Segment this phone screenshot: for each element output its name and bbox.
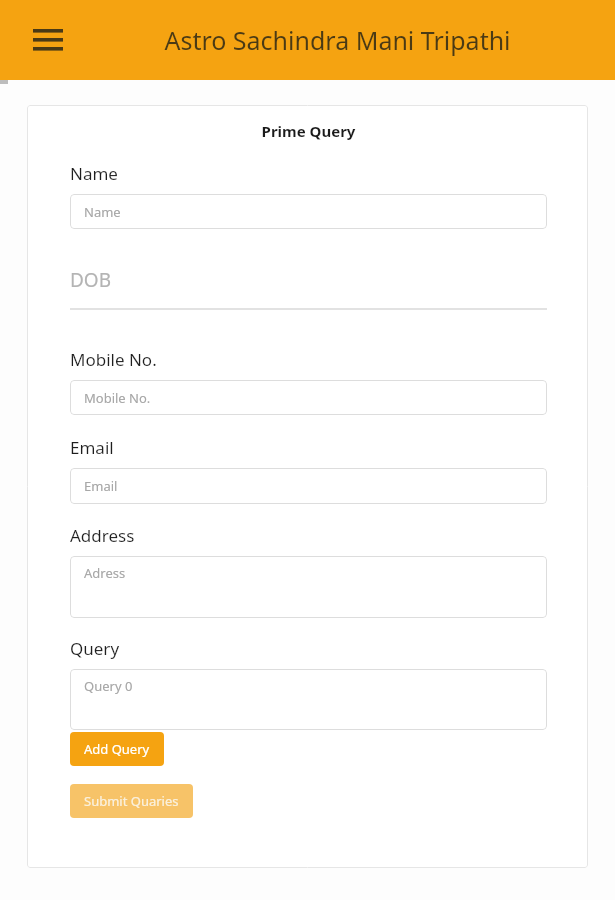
staticText: DOB	[70, 267, 112, 293]
staticText: Add Query	[84, 740, 150, 758]
button[interactable]: Open navigation menu	[22, 17, 74, 63]
button[interactable]: Mobile No.	[70, 380, 547, 415]
staticText: Email	[84, 477, 118, 495]
button[interactable]: Name	[70, 194, 547, 229]
staticText: Name	[70, 162, 118, 185]
button[interactable]: Email	[70, 468, 547, 504]
button[interactable]: Adress	[70, 556, 547, 618]
button[interactable]: Submit Quaries	[70, 784, 193, 818]
staticText: Email	[70, 436, 114, 459]
staticText: Mobile No.	[84, 389, 151, 407]
button[interactable]: Add Query	[70, 732, 164, 766]
staticText: Mobile No.	[70, 348, 157, 371]
staticText: Prime Query	[70, 121, 547, 141]
staticText: Address	[70, 524, 135, 547]
staticText: Submit Quaries	[84, 792, 179, 810]
staticText: Query 0	[84, 677, 133, 695]
staticText: Astro Sachindra Mani Tripathi	[164, 23, 511, 57]
staticText: Name	[84, 203, 121, 221]
staticText: Query	[70, 637, 120, 660]
button[interactable]: Query 0	[70, 669, 547, 730]
staticText: Adress	[84, 564, 126, 582]
